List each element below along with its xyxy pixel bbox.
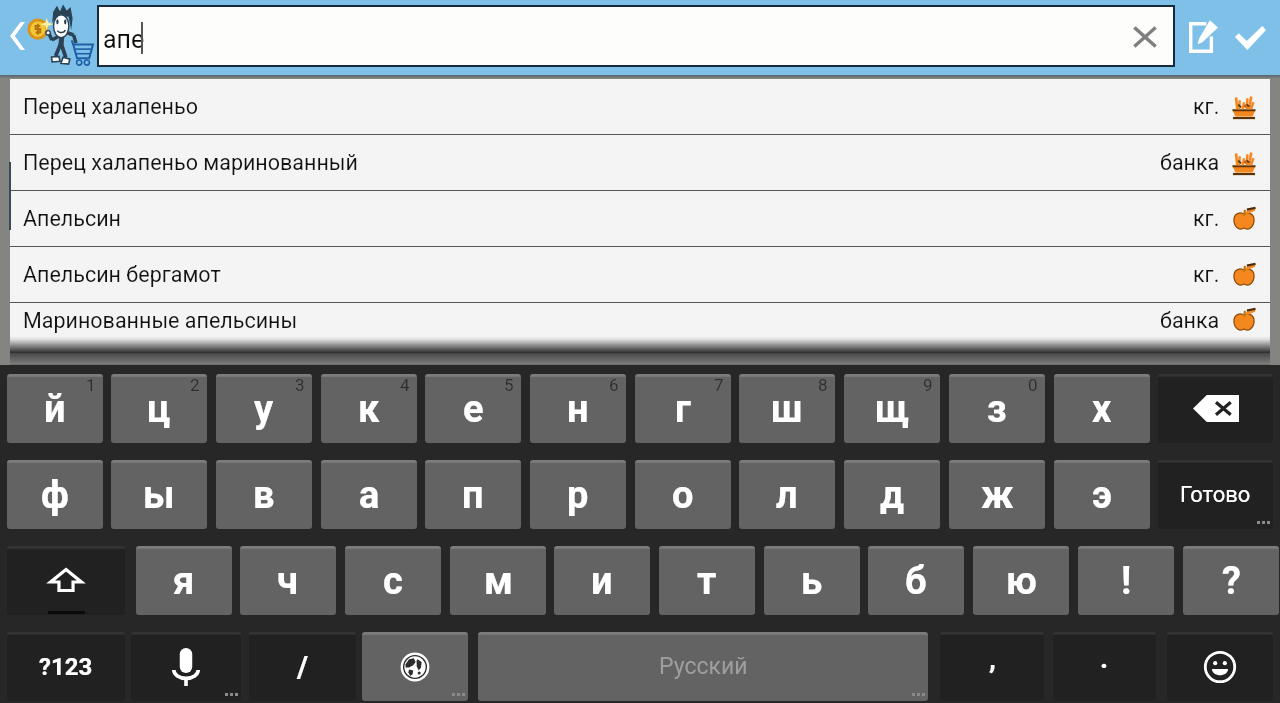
staticText: с xyxy=(383,559,403,604)
staticText: ! xyxy=(1121,559,1132,604)
button[interactable]: й xyxy=(7,374,103,443)
button[interactable]: ш xyxy=(739,374,835,443)
staticText: 4 xyxy=(400,375,410,395)
staticText: у xyxy=(254,387,274,432)
staticText: л xyxy=(776,473,798,518)
button[interactable]: Готово xyxy=(1158,460,1273,529)
button[interactable]: Clear text xyxy=(1120,12,1170,62)
staticText: 3 xyxy=(295,375,305,395)
button[interactable]: щ xyxy=(844,374,940,443)
staticText: о xyxy=(672,473,694,518)
button[interactable]: л xyxy=(739,460,835,529)
button[interactable]: / xyxy=(249,632,356,701)
staticText: п xyxy=(462,473,484,518)
button[interactable]: п xyxy=(425,460,521,529)
button[interactable]: в xyxy=(216,460,312,529)
staticText: ф xyxy=(41,473,69,518)
button[interactable]: э xyxy=(1054,460,1150,529)
button[interactable]: н xyxy=(530,374,626,443)
staticText: г xyxy=(675,387,691,432)
staticText: Апельсин xyxy=(23,206,1193,231)
staticText: й xyxy=(44,387,66,432)
staticText: а xyxy=(359,473,380,518)
staticText: Русский xyxy=(659,653,748,680)
staticText: Маринованные апельсины xyxy=(23,308,1160,333)
button[interactable]: б xyxy=(868,546,964,615)
button[interactable]: ! xyxy=(1078,546,1174,615)
staticText: банка xyxy=(1160,150,1220,175)
button[interactable]: Edit xyxy=(1181,14,1225,61)
staticText: к xyxy=(358,387,380,432)
button[interactable]: Emoji xyxy=(1167,632,1273,701)
staticText: ц xyxy=(147,387,171,432)
button[interactable]: ь xyxy=(764,546,860,615)
staticText: ш xyxy=(771,387,803,432)
button[interactable]: Перец халапеньо маринованный xyxy=(10,135,1270,190)
staticText: 7 xyxy=(714,375,724,395)
button[interactable]: о xyxy=(635,460,731,529)
button[interactable]: апе xyxy=(99,7,1173,65)
button[interactable]: ч xyxy=(240,546,336,615)
staticText: Готово xyxy=(1180,482,1251,508)
button[interactable]: ж xyxy=(949,460,1045,529)
button[interactable]: у xyxy=(216,374,312,443)
staticText: . xyxy=(1100,642,1109,675)
button[interactable]: Space xyxy=(478,632,928,701)
staticText: Перец халапеньо xyxy=(23,94,1193,119)
staticText: Апельсин бергамот xyxy=(23,262,1193,287)
staticText: 8 xyxy=(818,375,828,395)
button[interactable]: к xyxy=(321,374,417,443)
button[interactable]: Switch language xyxy=(362,632,468,701)
staticText: банка xyxy=(1160,308,1220,333)
button[interactable]: ц xyxy=(111,374,207,443)
button[interactable]: р xyxy=(530,460,626,529)
staticText: 0 xyxy=(1028,375,1038,395)
staticText: н xyxy=(567,387,589,432)
staticText: б xyxy=(905,559,927,604)
button[interactable]: и xyxy=(554,546,650,615)
staticText: ч xyxy=(277,559,299,604)
staticText: ю xyxy=(1006,559,1037,604)
staticText: д xyxy=(880,473,904,518)
button[interactable]: Апельсин xyxy=(10,191,1270,246)
staticText: ь xyxy=(801,559,823,604)
button[interactable]: г xyxy=(635,374,731,443)
staticText: м xyxy=(484,559,513,604)
staticText: 2 xyxy=(190,375,200,395)
staticText: ?123 xyxy=(39,653,93,681)
button[interactable]: ю xyxy=(973,546,1069,615)
button[interactable]: Shift xyxy=(7,546,125,615)
button[interactable]: ? xyxy=(1183,546,1279,615)
button[interactable]: Back xyxy=(0,8,34,64)
staticText: ? xyxy=(1222,559,1241,604)
staticText: в xyxy=(253,473,275,518)
button[interactable]: ?123 xyxy=(7,632,125,701)
button[interactable]: Done xyxy=(1228,14,1272,61)
staticText: 6 xyxy=(609,375,619,395)
button[interactable]: д xyxy=(844,460,940,529)
button[interactable]: , xyxy=(940,632,1044,701)
button[interactable]: ф xyxy=(7,460,103,529)
button[interactable]: Voice input xyxy=(131,632,241,701)
button[interactable]: Апельсин бергамот xyxy=(10,247,1270,302)
button[interactable]: . xyxy=(1053,632,1156,701)
button[interactable]: з xyxy=(949,374,1045,443)
button[interactable]: х xyxy=(1054,374,1150,443)
button[interactable]: е xyxy=(425,374,521,443)
staticText: з xyxy=(987,387,1007,432)
staticText: кг. xyxy=(1193,94,1220,119)
button[interactable]: а xyxy=(321,460,417,529)
staticText: я xyxy=(173,559,195,604)
staticText: 1 xyxy=(86,375,96,395)
staticText: кг. xyxy=(1193,206,1220,231)
button[interactable]: Маринованные апельсины xyxy=(10,303,1270,337)
button[interactable]: Перец халапеньо xyxy=(10,79,1270,134)
button[interactable]: м xyxy=(450,546,546,615)
button[interactable]: с xyxy=(345,546,441,615)
staticText: и xyxy=(591,559,613,604)
button[interactable]: т xyxy=(659,546,755,615)
staticText: Перец халапеньо маринованный xyxy=(23,150,1160,175)
button[interactable]: ы xyxy=(111,460,207,529)
button[interactable]: я xyxy=(136,546,232,615)
button[interactable]: Backspace xyxy=(1158,374,1273,443)
